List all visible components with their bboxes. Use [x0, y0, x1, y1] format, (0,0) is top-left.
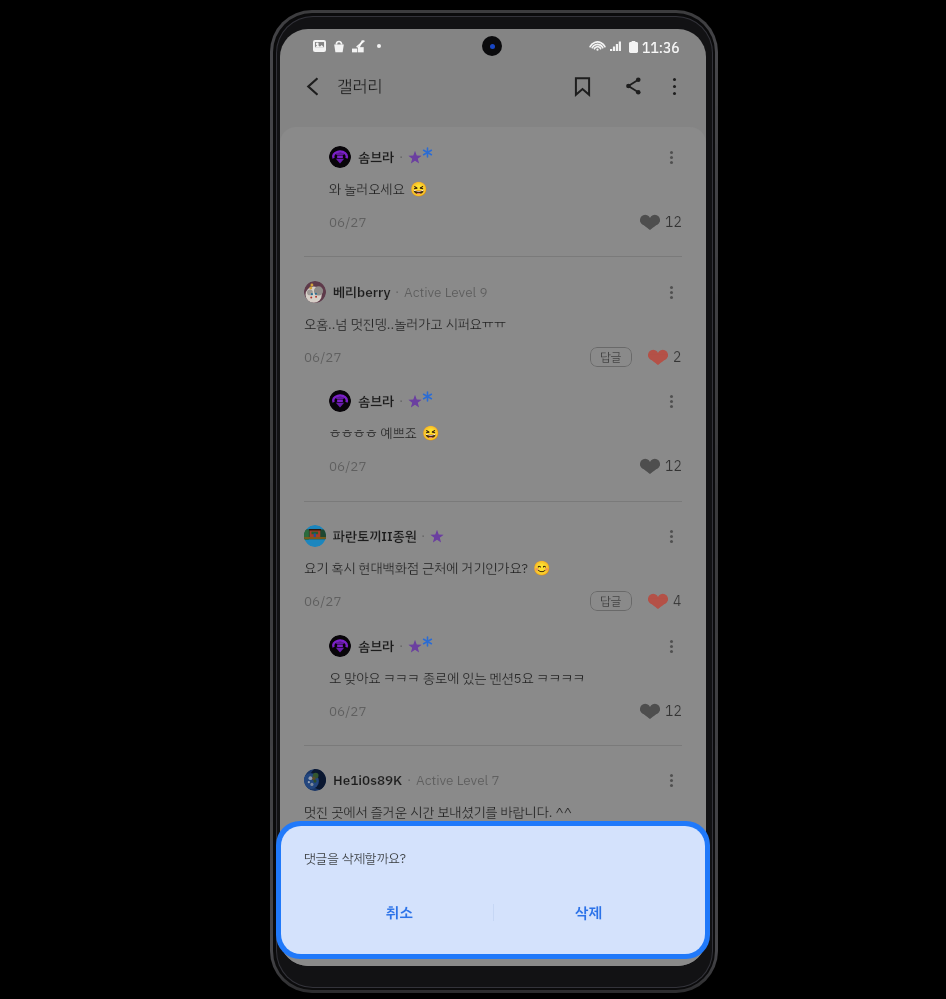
staticText: 06/27 [329, 701, 367, 721]
staticText: 06/27 [304, 347, 342, 367]
button[interactable]: 답글 [590, 591, 632, 611]
button[interactable]: 베리berry [280, 269, 706, 374]
staticText: 갤러리 [337, 74, 383, 99]
staticText: · [421, 526, 426, 546]
button[interactable]: More options [657, 69, 691, 103]
button[interactable]: 답글 [590, 347, 632, 367]
staticText: 솜브라 [358, 391, 395, 411]
button[interactable]: Bookmark [563, 67, 601, 105]
button[interactable]: 솜브라 [280, 134, 706, 239]
button[interactable]: 솜브라 [280, 623, 706, 728]
staticText: 2 [673, 347, 682, 367]
staticText: 😊 [533, 560, 551, 576]
staticText: 솜브라 [358, 147, 395, 167]
staticText: 06/27 [329, 212, 367, 232]
staticText: 답글 [600, 592, 622, 610]
button[interactable]: 파란토끼II종원 [280, 513, 706, 618]
button[interactable]: Comment options [660, 635, 682, 657]
staticText: 12 [665, 456, 682, 476]
button[interactable]: Comment options [660, 525, 682, 547]
staticText: · [399, 147, 404, 167]
staticText: · [399, 636, 404, 656]
button[interactable]: Like [648, 347, 682, 367]
button[interactable]: Like [640, 701, 682, 721]
staticText: He1i0s89K [333, 770, 403, 790]
staticText: 와 놀러오세요 [329, 179, 405, 199]
staticText: 멋진 곳에서 즐거운 시간 보내셨기를 바랍니다. ^^ [304, 802, 572, 822]
staticText: Active Level 7 [416, 770, 500, 790]
staticText: 06/27 [329, 456, 367, 476]
button[interactable]: Comment options [660, 146, 682, 168]
staticText: 06/27 [304, 591, 342, 611]
button[interactable]: Like [640, 456, 682, 476]
staticText: 😆 [410, 181, 428, 197]
button[interactable]: Like [648, 591, 682, 611]
staticText: 12 [665, 701, 682, 721]
button[interactable]: 솜브라 [280, 378, 706, 483]
staticText: ㅎㅎㅎㅎ 예쁘죠 [329, 423, 417, 443]
staticText: 삭제 [575, 902, 602, 925]
staticText: · [399, 391, 404, 411]
staticText: Active Level 9 [404, 282, 488, 302]
button[interactable]: Comment options [660, 769, 682, 791]
staticText: 😆 [422, 425, 440, 441]
staticText: 06/27 [304, 835, 342, 855]
button[interactable]: 취소 [343, 892, 455, 934]
staticText: 댓글을 삭제할까요? [304, 849, 407, 869]
staticText: · [407, 770, 412, 790]
staticText: 오홈..넘 멋진뎅..놀러가고 시퍼요ㅠㅠ [304, 314, 506, 334]
staticText: 베리berry [333, 282, 391, 302]
staticText: 오 맞아요 ㅋㅋㅋ 종로에 있는 멘션5요 ㅋㅋㅋㅋ [329, 668, 586, 688]
button[interactable]: Share [614, 67, 652, 105]
button[interactable]: Comment options [660, 390, 682, 412]
button[interactable]: He1i0s89K [280, 757, 706, 862]
staticText: 4 [673, 591, 682, 611]
button[interactable]: Back [293, 67, 331, 105]
staticText: · [395, 282, 400, 302]
staticText: 12 [665, 212, 682, 232]
staticText: 취소 [386, 902, 413, 925]
button[interactable]: Comment options [660, 281, 682, 303]
button[interactable]: Like [640, 212, 682, 232]
staticText: 11:36 [642, 38, 680, 59]
button[interactable]: 삭제 [532, 892, 644, 934]
staticText: 요기 혹시 현대백화점 근처에 거기인가요? [304, 558, 528, 578]
staticText: 답글 [600, 348, 622, 366]
staticText: 파란토끼II종원 [333, 526, 417, 546]
staticText: 솜브라 [358, 636, 395, 656]
